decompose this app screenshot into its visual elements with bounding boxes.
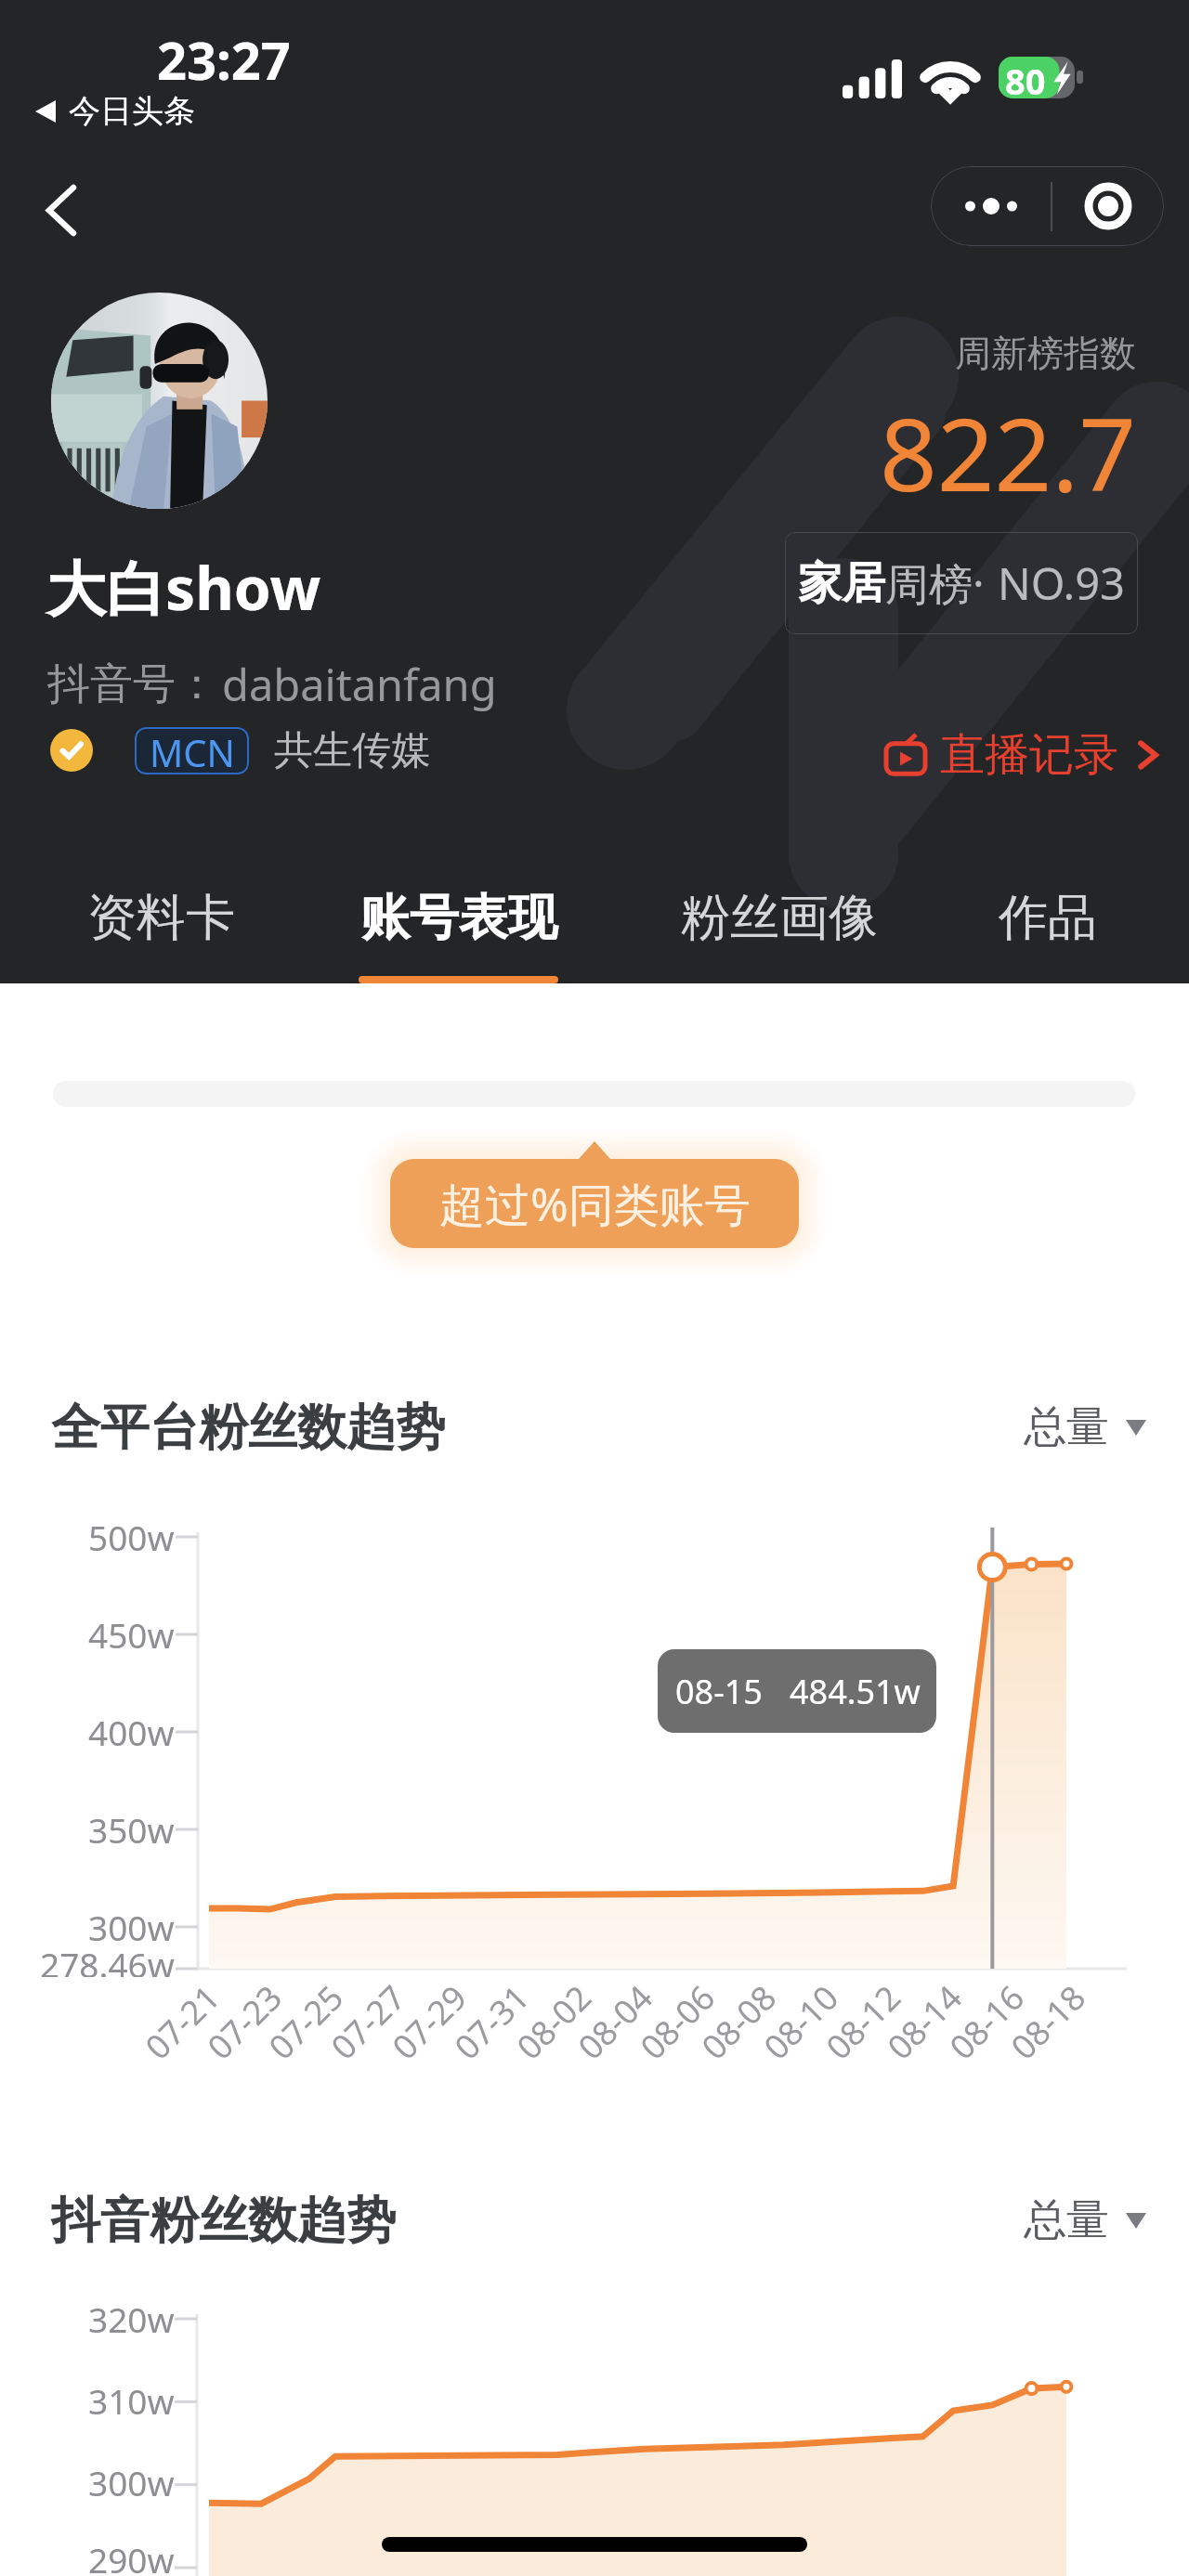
staticText: 抖音号：	[47, 657, 218, 711]
staticText: 抖音粉丝数趋势	[51, 2190, 396, 2252]
staticText: 周新榜指数	[955, 331, 1136, 376]
staticText: 400w	[88, 1709, 175, 1755]
staticText: NO.93	[998, 553, 1125, 613]
staticText: 310w	[88, 2377, 175, 2424]
button[interactable]: 超过%同类账号	[390, 1159, 799, 1248]
staticText: 07-29	[382, 1975, 476, 2069]
button[interactable]: Back	[7, 163, 114, 256]
staticText: 超过%同类账号	[439, 1173, 751, 1235]
button[interactable]: 总量	[1024, 1400, 1146, 1454]
staticText: 08-15	[675, 1669, 763, 1714]
staticText: 450w	[88, 1611, 175, 1658]
staticText: 07-23	[197, 1975, 291, 2069]
button[interactable]: 直播记录	[884, 722, 1161, 787]
staticText: 作品	[999, 887, 1097, 949]
staticText: 07-21	[135, 1975, 229, 2069]
staticText: 账号表现	[360, 887, 557, 949]
staticText: 今日头条	[69, 91, 195, 131]
staticText: 822.7	[880, 384, 1137, 521]
button[interactable]: 总量	[1024, 2193, 1146, 2247]
staticText: 08-02	[507, 1975, 601, 2069]
staticText: dabaitanfang	[222, 655, 497, 714]
staticText: 大白show	[46, 547, 321, 628]
button[interactable]: Profile avatar	[51, 293, 268, 509]
staticText: 08-08	[691, 1975, 785, 2069]
staticText: 23:27	[157, 24, 291, 95]
staticText: 08-12	[816, 1975, 910, 2069]
staticText: 08-04	[568, 1975, 662, 2069]
staticText: 80	[1005, 57, 1046, 98]
button[interactable]: 账号表现	[333, 836, 585, 983]
staticText: 290w	[88, 2536, 175, 2576]
staticText: 350w	[88, 1806, 175, 1853]
staticText: 08-14	[877, 1975, 971, 2069]
staticText: 总量	[1024, 1400, 1109, 1454]
staticText: 周榜·	[885, 553, 985, 613]
staticText: 08-06	[630, 1975, 724, 2069]
staticText: 粉丝画像	[681, 887, 878, 949]
staticText: 直播记录	[940, 727, 1118, 783]
staticText: 07-31	[444, 1975, 538, 2069]
staticText: 320w	[88, 2296, 175, 2342]
staticText: 300w	[88, 1904, 175, 1950]
staticText: 总量	[1024, 2193, 1109, 2247]
button[interactable]: Close mini program	[1052, 166, 1164, 246]
button[interactable]: More options	[931, 166, 1051, 246]
button[interactable]: MCN	[50, 722, 430, 778]
button[interactable]: 作品	[972, 836, 1124, 983]
staticText: 08-10	[754, 1975, 848, 2069]
button[interactable]: 资料卡	[59, 836, 264, 983]
staticText: 300w	[88, 2459, 175, 2505]
staticText: 08-16	[939, 1975, 1033, 2069]
staticText: 家居	[798, 556, 885, 611]
staticText: 500w	[88, 1514, 175, 1560]
staticText: 07-25	[259, 1975, 353, 2069]
button[interactable]: 家居	[785, 532, 1138, 634]
staticText: 全平台粉丝数趋势	[51, 1397, 445, 1459]
staticText: 07-27	[321, 1975, 415, 2069]
staticText: 资料卡	[87, 887, 235, 949]
staticText: MCN	[150, 727, 235, 774]
staticText: 共生传媒	[274, 726, 430, 775]
staticText: 278.46w	[40, 1941, 175, 1977]
staticText: 484.51w	[790, 1669, 921, 1714]
button[interactable]: 粉丝画像	[652, 836, 906, 983]
staticText: 08-18	[1001, 1975, 1095, 2069]
